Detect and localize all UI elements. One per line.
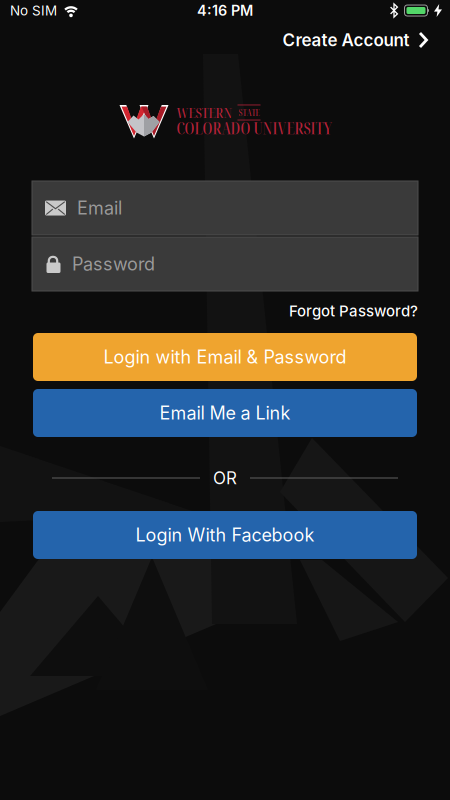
staticText: Forgot Password?: [289, 302, 418, 320]
button[interactable]: Password: [32, 237, 418, 291]
button[interactable]: Email: [32, 181, 418, 235]
button[interactable]: Login with Email & Password: [33, 333, 417, 381]
staticText: STATE: [238, 107, 259, 118]
button[interactable]: Forgot Password?: [289, 302, 418, 320]
staticText: Create Account: [282, 30, 409, 50]
staticText: Login with Email & Password: [103, 346, 346, 368]
staticText: WESTERN: [176, 103, 232, 122]
staticText: Login With Facebook: [135, 524, 314, 546]
staticText: OR: [213, 468, 237, 488]
staticText: No SIM: [10, 2, 57, 19]
button[interactable]: Create Account: [282, 30, 428, 50]
staticText: Password: [72, 253, 155, 275]
staticText: 4:16 PM: [197, 2, 253, 19]
staticText: COLORADO UNIVERSITY: [176, 117, 332, 139]
button[interactable]: Login With Facebook: [33, 511, 417, 559]
button[interactable]: Email Me a Link: [33, 389, 417, 437]
staticText: Email: [77, 197, 122, 219]
staticText: Email Me a Link: [159, 402, 290, 424]
